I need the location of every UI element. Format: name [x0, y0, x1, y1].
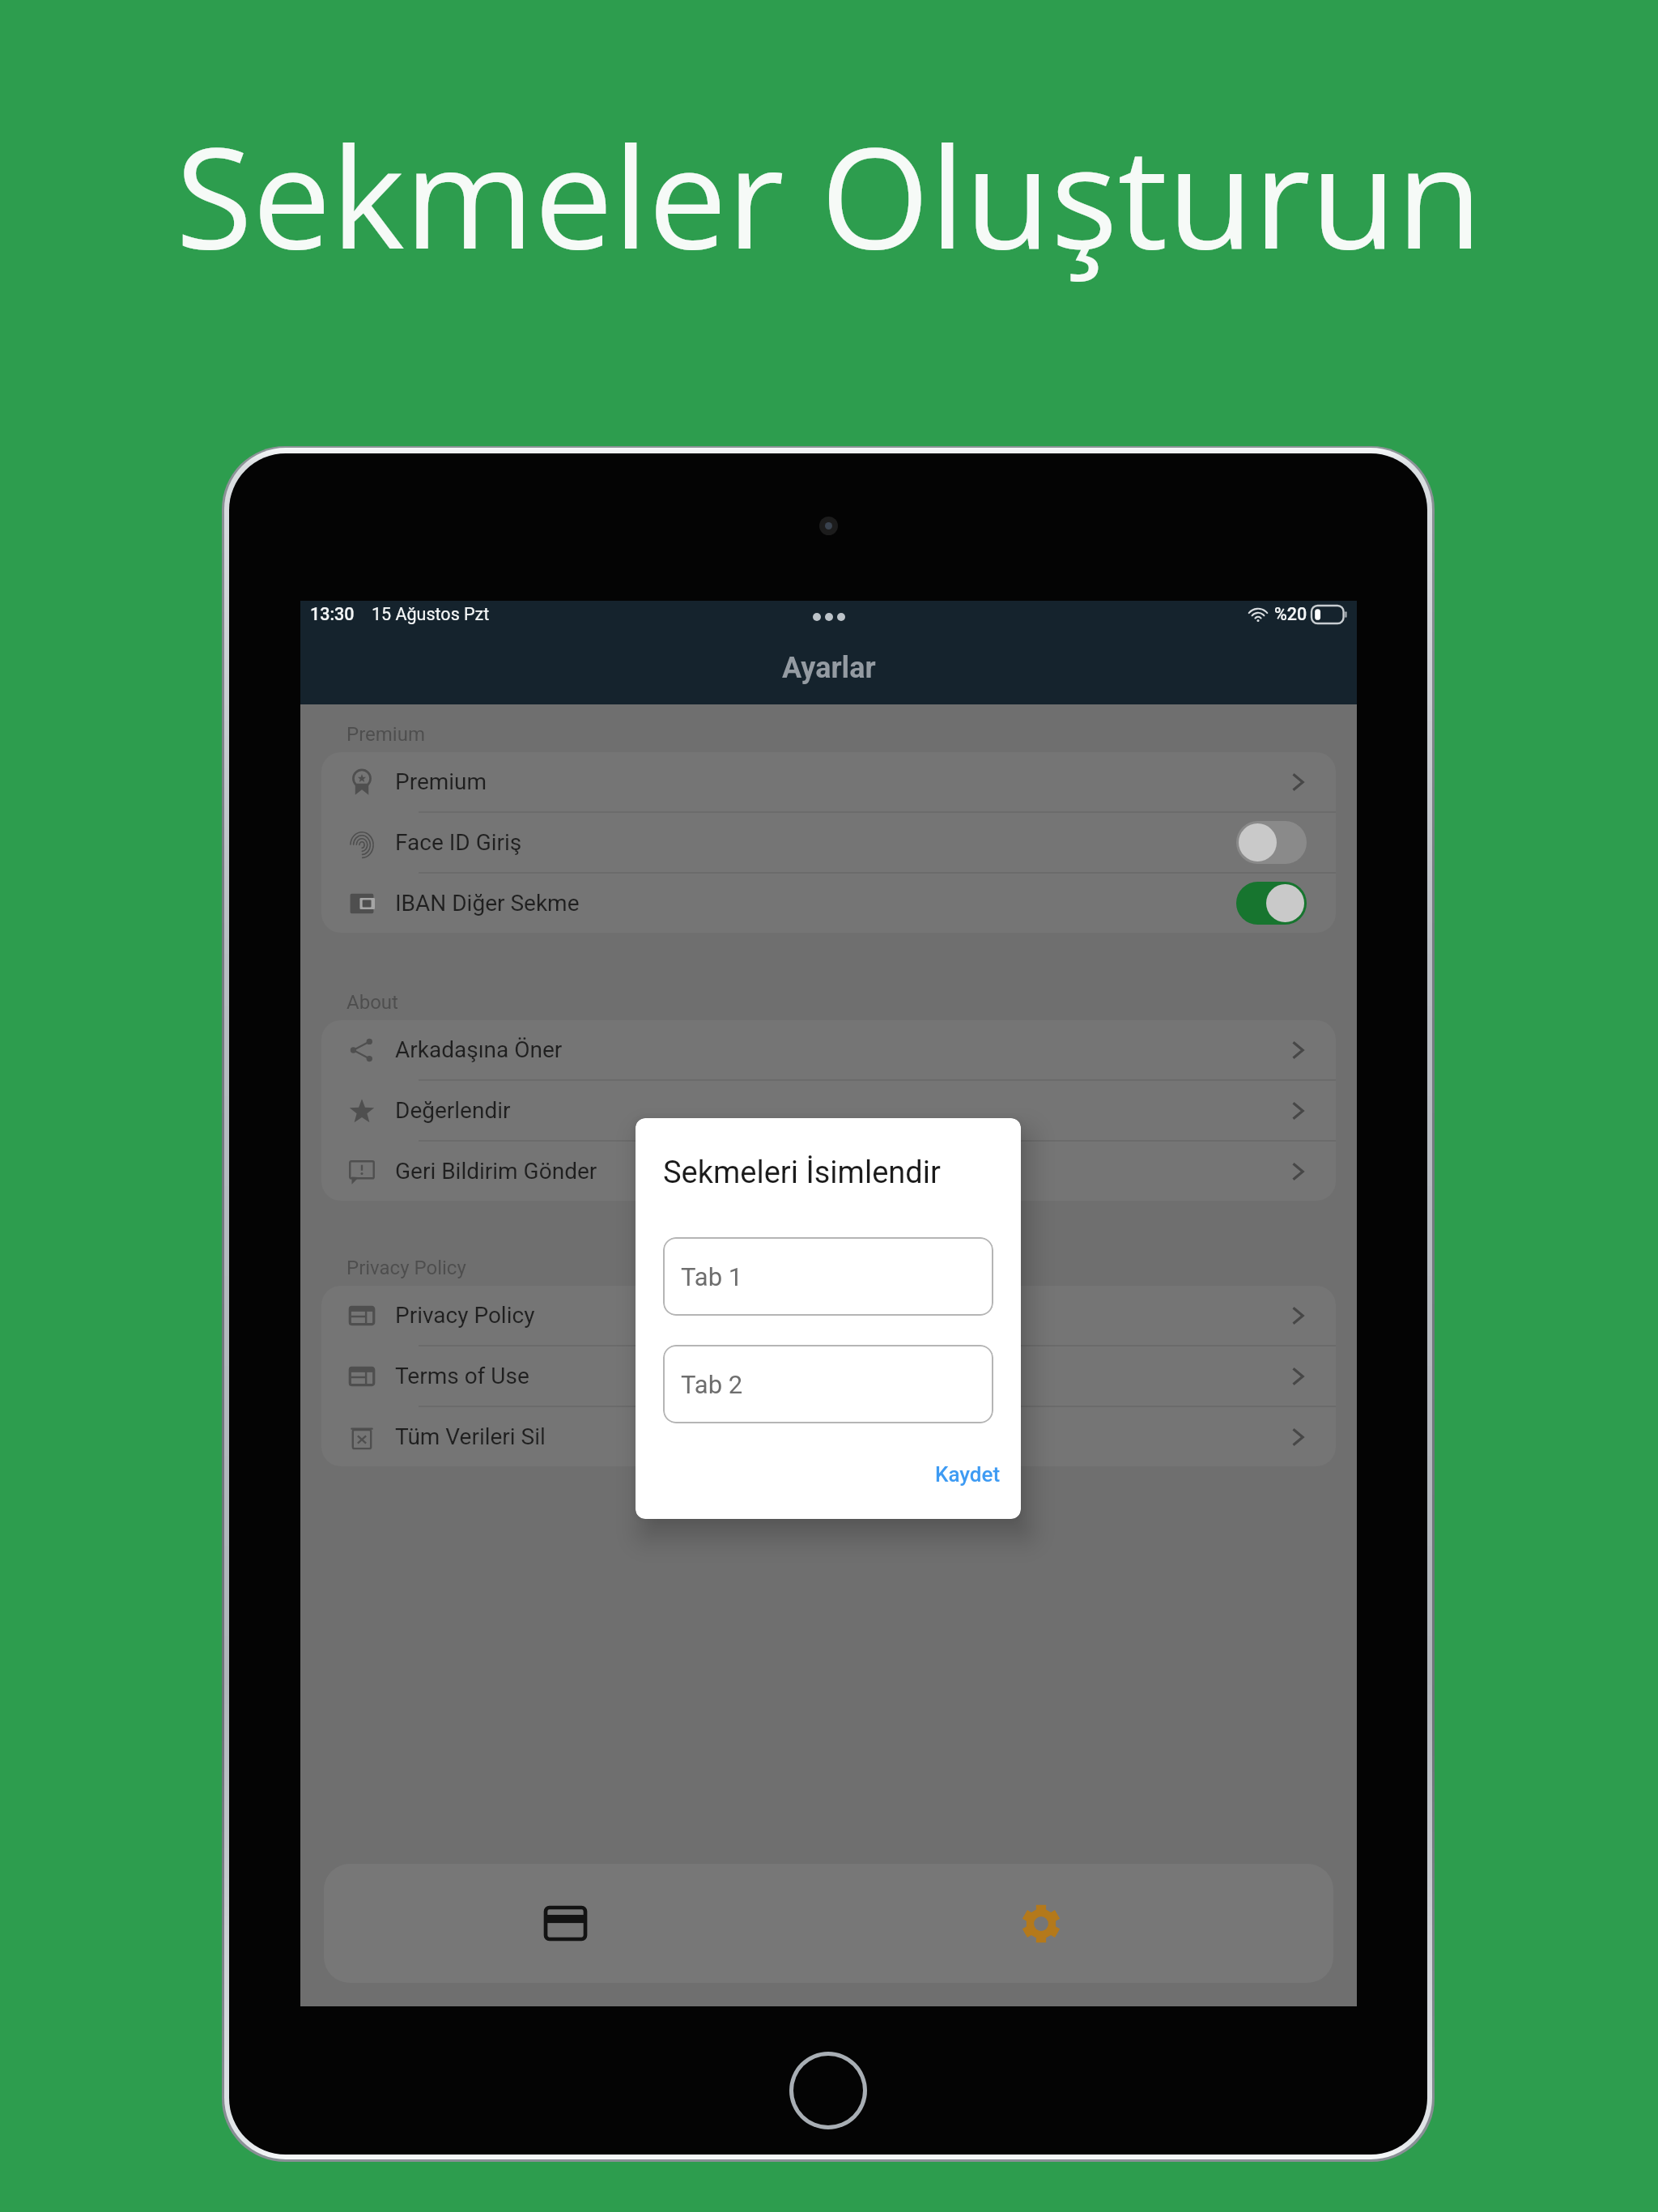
button[interactable]: Kartlar: [505, 1864, 625, 1983]
staticText: About: [346, 991, 398, 1014]
staticText: Premium: [346, 723, 425, 746]
staticText: %20: [1274, 604, 1307, 624]
staticText: Değerlendir: [395, 1097, 511, 1124]
staticText: Premium: [395, 768, 487, 795]
button[interactable]: Premium: [321, 752, 1336, 811]
button[interactable]: Face ID Giriş: [321, 813, 1336, 872]
button[interactable]: Açık: [1236, 882, 1307, 925]
staticText: 13:30: [310, 604, 355, 624]
staticText: Ayarlar: [782, 651, 876, 685]
staticText: Sekmeler Oluşturun: [0, 99, 1658, 290]
button[interactable]: Kaydet: [935, 1462, 1001, 1519]
staticText: 15 Ağustos Pzt: [372, 604, 490, 624]
staticText: Tüm Verileri Sil: [395, 1423, 546, 1450]
staticText: Tab 1: [681, 1262, 743, 1291]
button[interactable]: Geri Bildirim Gönder: [321, 1142, 1336, 1201]
button[interactable]: Terms of Use: [321, 1346, 1336, 1406]
staticText: Sekmeleri İsimlendir: [663, 1155, 941, 1191]
button[interactable]: Kapalı: [1236, 821, 1307, 864]
button[interactable]: Arkadaşına Öner: [321, 1020, 1336, 1079]
staticText: Face ID Giriş: [395, 829, 522, 856]
staticText: Tab 2: [681, 1370, 743, 1399]
staticText: Arkadaşına Öner: [395, 1036, 563, 1063]
staticText: Geri Bildirim Gönder: [395, 1158, 597, 1185]
button[interactable]: Home: [793, 2056, 863, 2125]
staticText: IBAN Diğer Sekme: [395, 890, 580, 917]
button[interactable]: Tab 1: [663, 1237, 993, 1316]
button[interactable]: Tüm Verileri Sil: [321, 1407, 1336, 1466]
staticText: Privacy Policy: [346, 1257, 466, 1279]
button[interactable]: Tab 2: [663, 1345, 993, 1423]
staticText: Terms of Use: [395, 1363, 529, 1389]
button[interactable]: Değerlendir: [321, 1081, 1336, 1140]
button[interactable]: Privacy Policy: [321, 1286, 1336, 1345]
button[interactable]: Ayarlar: [981, 1864, 1101, 1983]
button[interactable]: IBAN Diğer Sekme: [321, 874, 1336, 933]
staticText: Kaydet: [935, 1462, 1001, 1487]
staticText: Privacy Policy: [395, 1302, 535, 1329]
